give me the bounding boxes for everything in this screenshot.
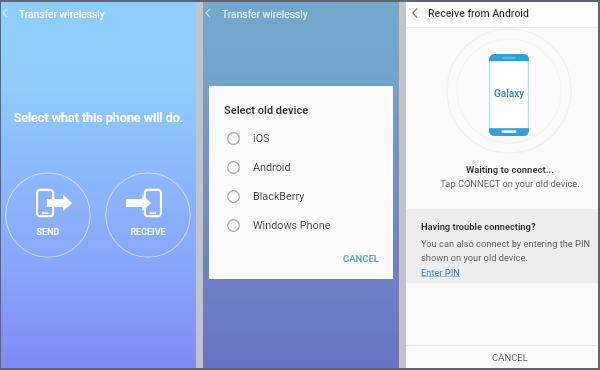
staticText: CANCEL [343, 253, 379, 264]
staticText: RECEIVE [105, 227, 191, 238]
button[interactable]: Back [201, 1, 215, 25]
button[interactable]: CANCEL [406, 346, 598, 368]
staticText: shown on your old device. [421, 252, 528, 263]
staticText: Galaxy [494, 88, 525, 100]
staticText: Tap CONNECT on your old device. [422, 178, 598, 189]
button[interactable]: Back [0, 1, 12, 25]
staticText: Select old device [224, 104, 309, 117]
staticText: iOS [253, 132, 270, 145]
button[interactable]: CANCEL [329, 248, 393, 269]
staticText: Waiting to connect... [422, 164, 598, 175]
staticText: Android [253, 161, 291, 174]
staticText: You can also connect by entering the PIN [421, 238, 591, 249]
staticText: Receive from Android [428, 7, 529, 19]
staticText: CANCEL [492, 352, 528, 363]
staticText: Transfer wirelessly [19, 8, 105, 20]
button[interactable]: SEND [5, 172, 91, 258]
button[interactable]: Windows Phone [209, 211, 393, 240]
button[interactable]: Enter PIN [421, 267, 460, 278]
button[interactable]: Android [209, 153, 393, 182]
staticText: BlackBerry [253, 190, 305, 203]
button[interactable]: RECEIVE [105, 172, 191, 258]
button[interactable]: Back [406, 0, 424, 25]
staticText: SEND [5, 227, 91, 238]
staticText: Select what this phone will do. [1, 110, 196, 125]
staticText: Transfer wirelessly [222, 8, 308, 20]
staticText: Having trouble connecting? [421, 221, 536, 232]
staticText: Enter PIN [421, 267, 460, 278]
button[interactable]: BlackBerry [209, 182, 393, 211]
staticText: Windows Phone [253, 219, 331, 232]
button[interactable]: iOS [209, 124, 393, 153]
